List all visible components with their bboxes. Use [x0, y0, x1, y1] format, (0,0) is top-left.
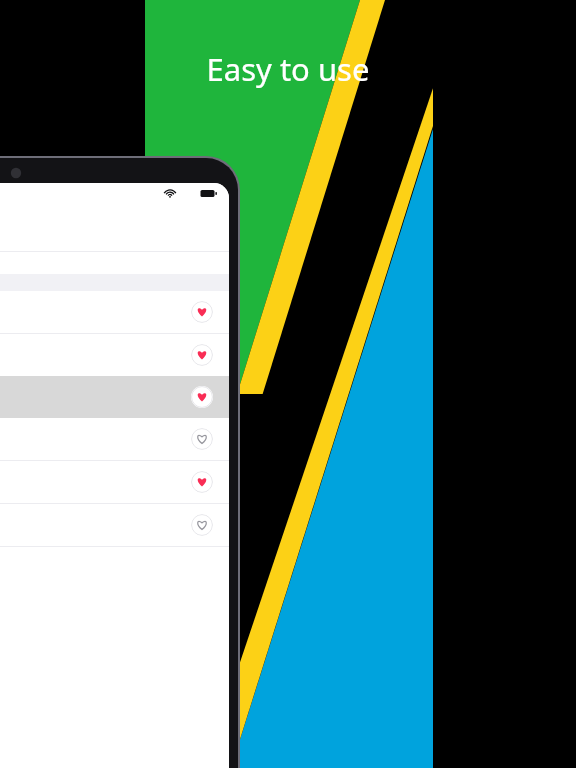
- button[interactable]: Remove from favourites: [191, 344, 213, 366]
- button[interactable]: Remove from favourites: [0, 461, 229, 503]
- button[interactable]: Add to favourites: [191, 428, 213, 450]
- button[interactable]: Remove from favourites: [191, 301, 213, 323]
- button[interactable]: Add to favourites: [191, 514, 213, 536]
- button[interactable]: Add to favourites: [0, 504, 229, 546]
- staticText: Easy to use: [0, 48, 576, 90]
- button[interactable]: Remove from favourites: [191, 386, 213, 408]
- button[interactable]: Remove from favourites: [0, 291, 229, 333]
- button[interactable]: Remove from favourites: [0, 376, 229, 418]
- button[interactable]: Remove from favourites: [191, 471, 213, 493]
- button[interactable]: Add to favourites: [0, 418, 229, 460]
- button[interactable]: Remove from favourites: [0, 334, 229, 376]
